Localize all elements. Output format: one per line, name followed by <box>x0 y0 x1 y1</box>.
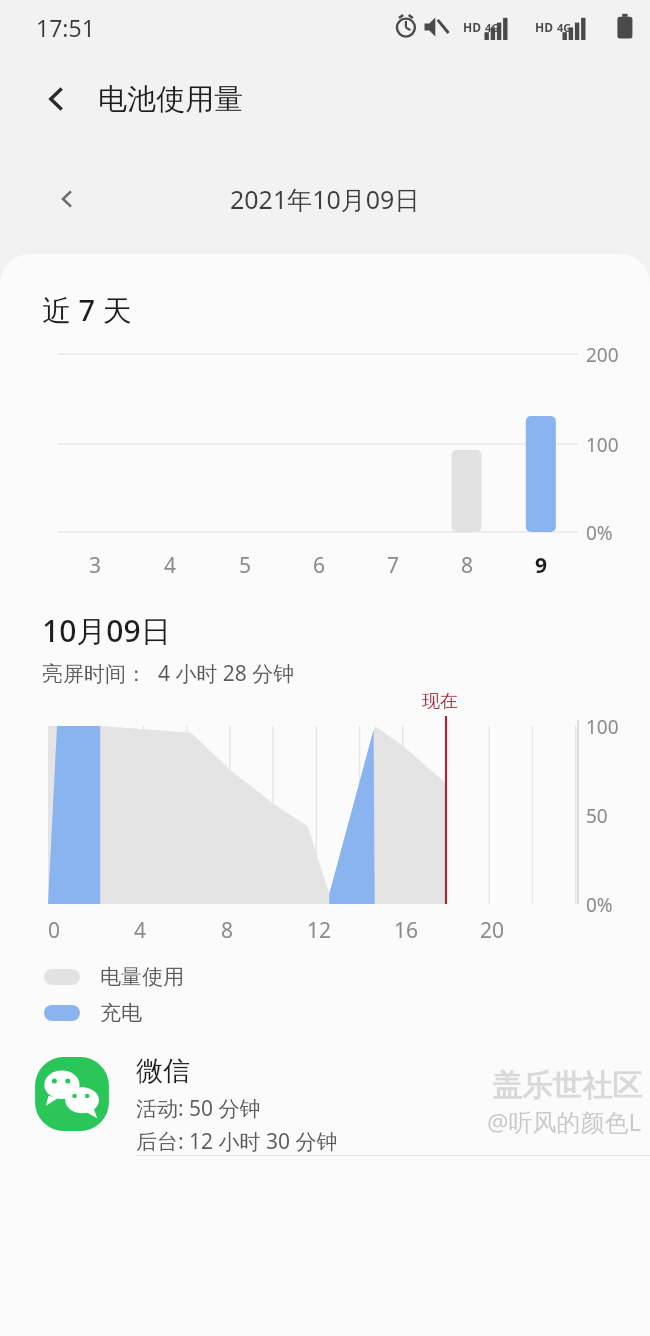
staticText: 盖乐世社区 <box>492 1067 642 1105</box>
staticText: 2021年10月09日 <box>230 182 420 216</box>
staticText: 微信 <box>136 1054 190 1088</box>
staticText: 近 7 天 <box>42 290 132 330</box>
staticText: @听风的颜色L <box>487 1105 642 1138</box>
staticText: 10月09日 <box>42 610 171 651</box>
staticText: 100 <box>586 432 619 458</box>
staticText: 后台: 12 小时 30 分钟 <box>136 1127 338 1156</box>
staticText: HD <box>463 19 481 35</box>
staticText: 充电 <box>100 1000 142 1026</box>
staticText: 50 <box>586 803 608 829</box>
staticText: 8 <box>221 916 234 945</box>
staticText: 5 <box>239 551 252 580</box>
button[interactable]: 微信 <box>0 1048 650 1156</box>
staticText: 4G <box>485 20 500 35</box>
staticText: 6 <box>313 551 326 580</box>
staticText: 16 <box>394 916 419 945</box>
staticText: 0% <box>586 892 613 918</box>
staticText: 4 <box>134 916 147 945</box>
button[interactable]: Previous day <box>42 174 92 224</box>
button[interactable]: Back <box>30 72 84 126</box>
staticText: 8 <box>461 551 474 580</box>
staticText: 电量使用 <box>100 964 184 990</box>
staticText: 9 <box>535 551 548 580</box>
staticText: 电池使用量 <box>98 81 243 118</box>
staticText: 17:51 <box>36 12 95 43</box>
staticText: 0% <box>586 520 613 546</box>
staticText: 200 <box>586 342 619 368</box>
staticText: HD <box>535 19 553 35</box>
staticText: 3 <box>89 551 102 580</box>
staticText: 7 <box>387 551 400 580</box>
staticText: 活动: 50 分钟 <box>136 1094 261 1123</box>
staticText: 亮屏时间： 4 小时 28 分钟 <box>42 659 295 688</box>
staticText: 4 <box>164 551 177 580</box>
staticText: 4G <box>557 20 572 35</box>
staticText: 现在 <box>422 690 458 713</box>
staticText: 12 <box>307 916 332 945</box>
staticText: 20 <box>480 916 505 945</box>
staticText: 100 <box>586 714 619 740</box>
staticText: 0 <box>48 916 61 945</box>
